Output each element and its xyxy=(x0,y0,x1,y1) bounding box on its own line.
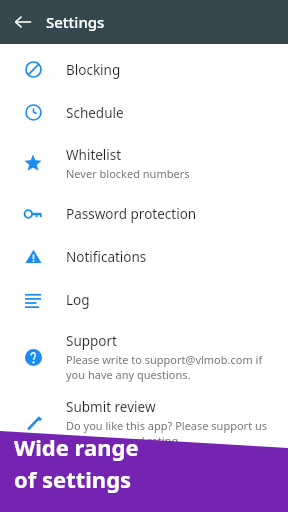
staticText: Log xyxy=(66,291,90,309)
staticText: Settings xyxy=(46,12,105,32)
button[interactable]: Log xyxy=(0,278,288,321)
button[interactable]: Password protection xyxy=(0,192,288,235)
staticText: Do you like this app? Please support us … xyxy=(66,418,276,448)
staticText: Submit review xyxy=(66,398,156,416)
staticText: Password protection xyxy=(66,205,197,223)
button[interactable]: Whitelist xyxy=(0,134,288,192)
button[interactable]: Notifications xyxy=(0,235,288,278)
button[interactable]: Support xyxy=(0,321,288,393)
staticText: Please write to support@vlmob.com if you… xyxy=(66,352,276,382)
staticText: Never blocked numbers xyxy=(66,166,190,181)
staticText: Wide range xyxy=(14,432,139,462)
staticText: Support xyxy=(66,332,117,350)
button[interactable]: Schedule xyxy=(0,91,288,134)
button[interactable]: Back xyxy=(0,0,46,44)
staticText: of settings xyxy=(14,464,132,494)
staticText: Blocking xyxy=(66,61,121,79)
button[interactable]: Blocking xyxy=(0,48,288,91)
button[interactable]: Submit review xyxy=(0,393,288,453)
staticText: Whitelist xyxy=(66,146,122,164)
staticText: Notifications xyxy=(66,248,147,266)
staticText: Schedule xyxy=(66,104,124,122)
